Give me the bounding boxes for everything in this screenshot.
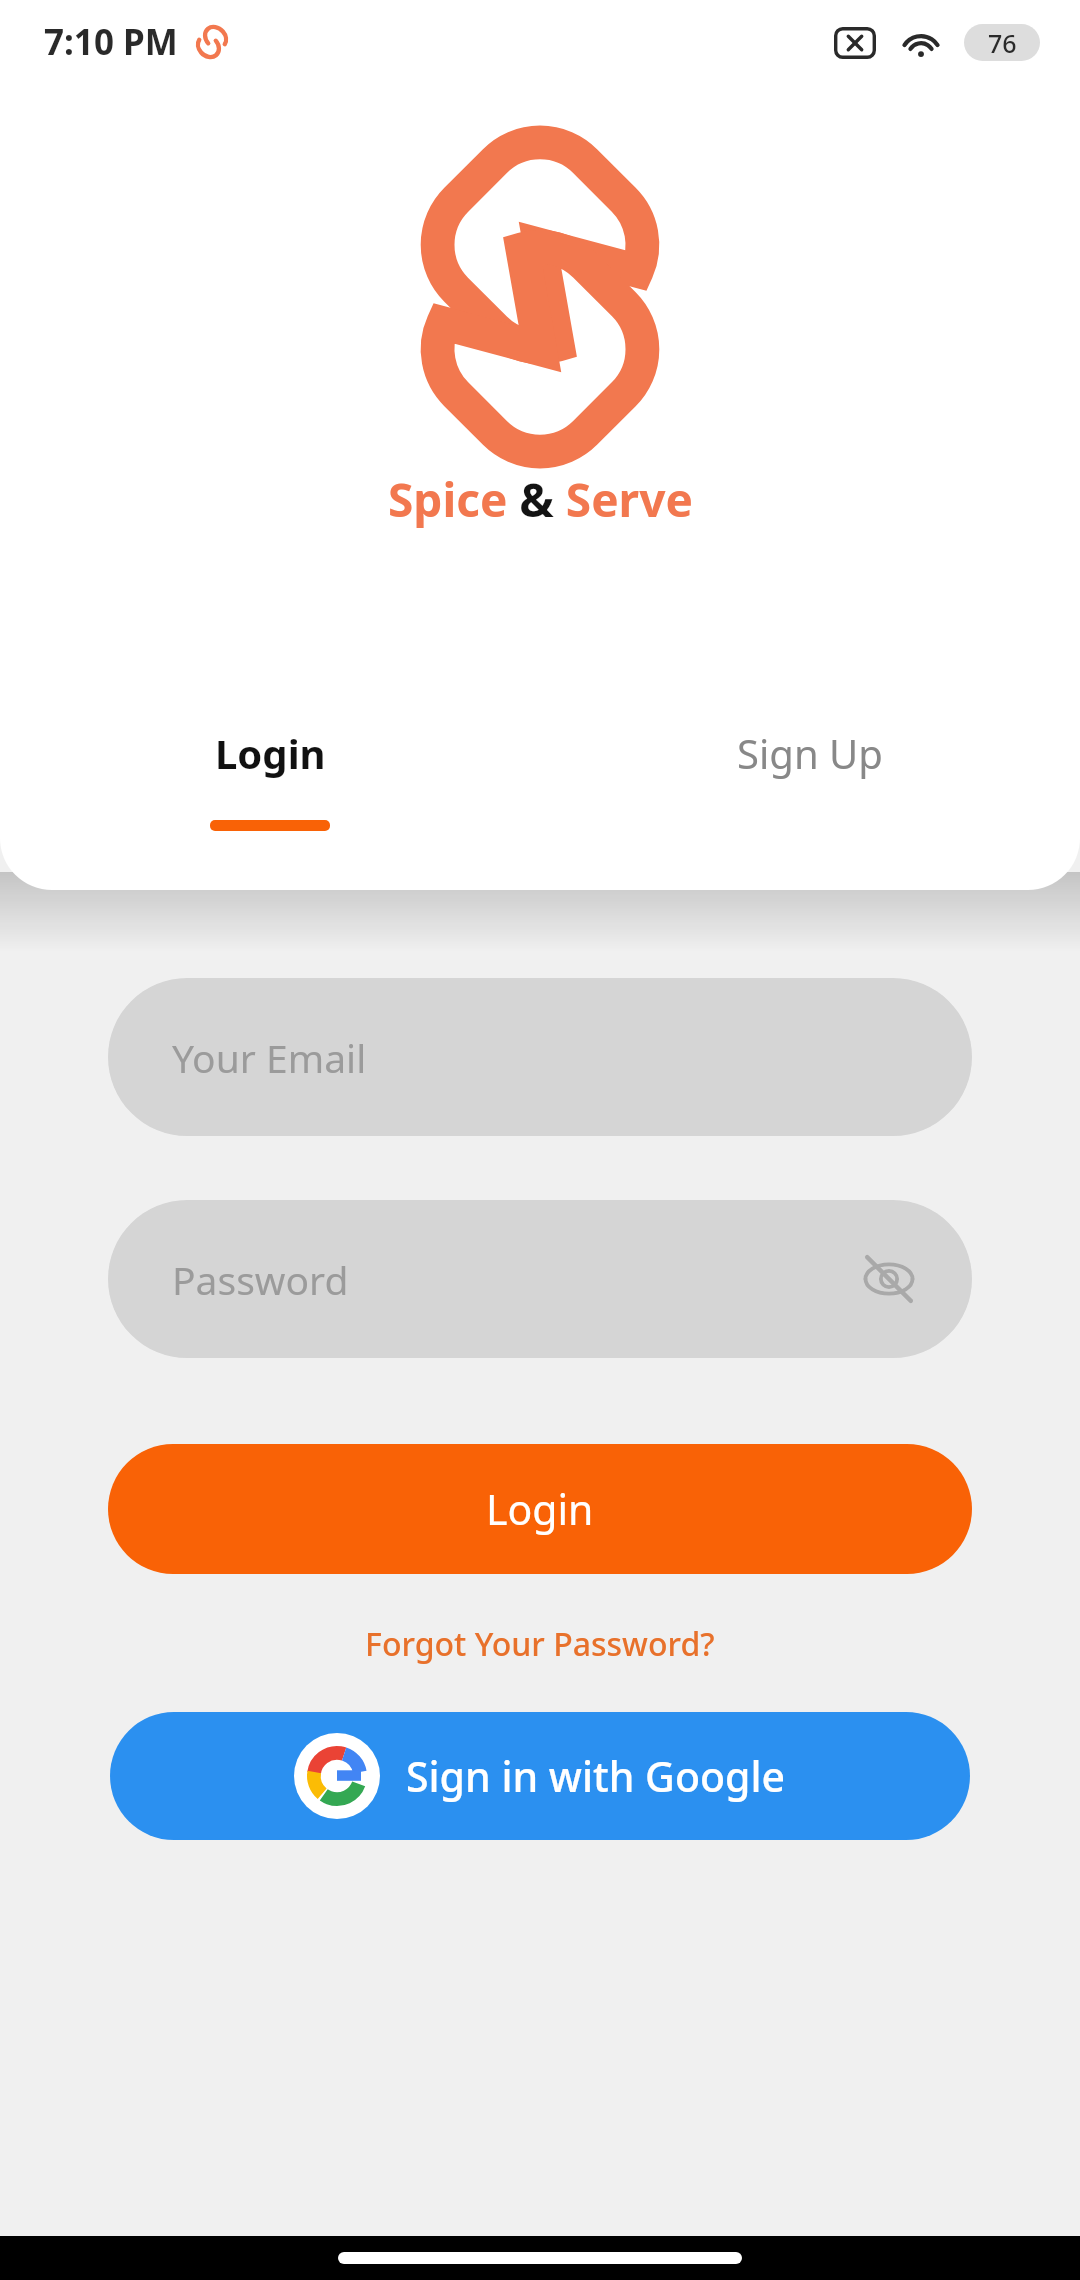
staticText: Spice & Serve bbox=[388, 468, 693, 531]
button[interactable]: Your Email bbox=[108, 978, 972, 1136]
button[interactable]: Forgot Your Password? bbox=[351, 1614, 729, 1674]
staticText: Sign in with Google bbox=[406, 1748, 786, 1804]
staticText: Login bbox=[215, 726, 326, 780]
staticText: Sign Up bbox=[737, 726, 883, 780]
button[interactable]: Sign Up bbox=[540, 714, 1080, 843]
staticText: Forgot Your Password? bbox=[365, 1622, 715, 1666]
button[interactable]: Show password bbox=[856, 1246, 922, 1312]
staticText: 76 bbox=[988, 26, 1017, 60]
button[interactable]: Login bbox=[0, 714, 540, 843]
staticText: Password bbox=[172, 1253, 349, 1306]
button[interactable]: Login bbox=[108, 1444, 972, 1574]
button[interactable]: Sign in with Google bbox=[110, 1712, 970, 1840]
staticText: Login bbox=[486, 1481, 594, 1537]
staticText: Your Email bbox=[172, 1031, 367, 1084]
staticText: 7:10 PM bbox=[44, 18, 178, 66]
button[interactable]: Password bbox=[108, 1200, 972, 1358]
